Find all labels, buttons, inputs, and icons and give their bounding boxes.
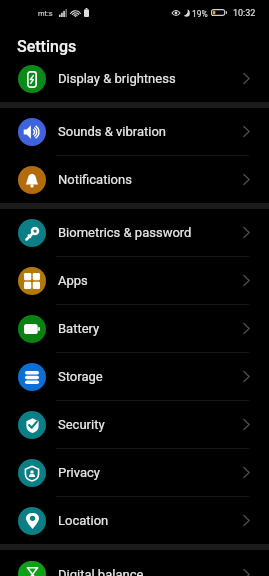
staticText: mt:s <box>38 9 53 18</box>
staticText: Sounds & vibration <box>58 124 167 139</box>
staticText: Digital balance <box>58 567 144 576</box>
staticText: Notifications <box>58 172 132 187</box>
staticText: Settings <box>17 37 77 56</box>
staticText: Privacy <box>58 465 100 480</box>
button[interactable]: Location <box>0 497 269 544</box>
button[interactable]: Notifications <box>0 156 269 203</box>
button[interactable]: Display & brightness <box>0 55 269 102</box>
button[interactable]: Digital balance <box>0 550 269 576</box>
staticText: Security <box>58 417 105 432</box>
staticText: Location <box>58 513 109 528</box>
staticText: Apps <box>58 273 88 288</box>
button[interactable]: Apps <box>0 257 269 304</box>
staticText: 19% <box>192 9 208 19</box>
staticText: Biometrics & password <box>58 225 192 240</box>
button[interactable]: Storage <box>0 353 269 400</box>
button[interactable]: Battery <box>0 305 269 352</box>
button[interactable]: Biometrics & password <box>0 209 269 256</box>
staticText: Storage <box>58 369 103 384</box>
button[interactable]: Sounds & vibration <box>0 108 269 155</box>
staticText: Battery <box>58 321 100 336</box>
staticText: 10:32 <box>233 8 256 19</box>
button[interactable]: Privacy <box>0 449 269 496</box>
staticText: Display & brightness <box>58 71 176 86</box>
button[interactable]: Security <box>0 401 269 448</box>
